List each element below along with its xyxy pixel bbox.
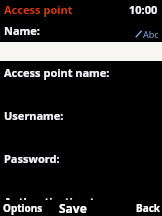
staticText: 10:00 — [129, 2, 158, 17]
staticText: Access point — [4, 2, 73, 17]
button[interactable]: Access point name: — [0, 65, 162, 80]
staticText: Username: — [4, 108, 64, 123]
button[interactable]: Username: — [0, 108, 162, 123]
button[interactable]: Text input mode Abc — [135, 28, 162, 42]
staticText: Name: — [4, 23, 40, 38]
button[interactable]: Back — [136, 201, 162, 215]
staticText: Authentication type: — [4, 194, 118, 209]
staticText: Access point name: — [4, 65, 110, 80]
button[interactable]: Options — [0, 201, 43, 215]
button[interactable]: Authentication type: — [0, 194, 162, 209]
button[interactable]: Save — [59, 200, 87, 216]
staticText: Password: — [4, 151, 60, 166]
button[interactable]: Password: — [0, 151, 162, 166]
staticText: Abc — [143, 28, 159, 40]
